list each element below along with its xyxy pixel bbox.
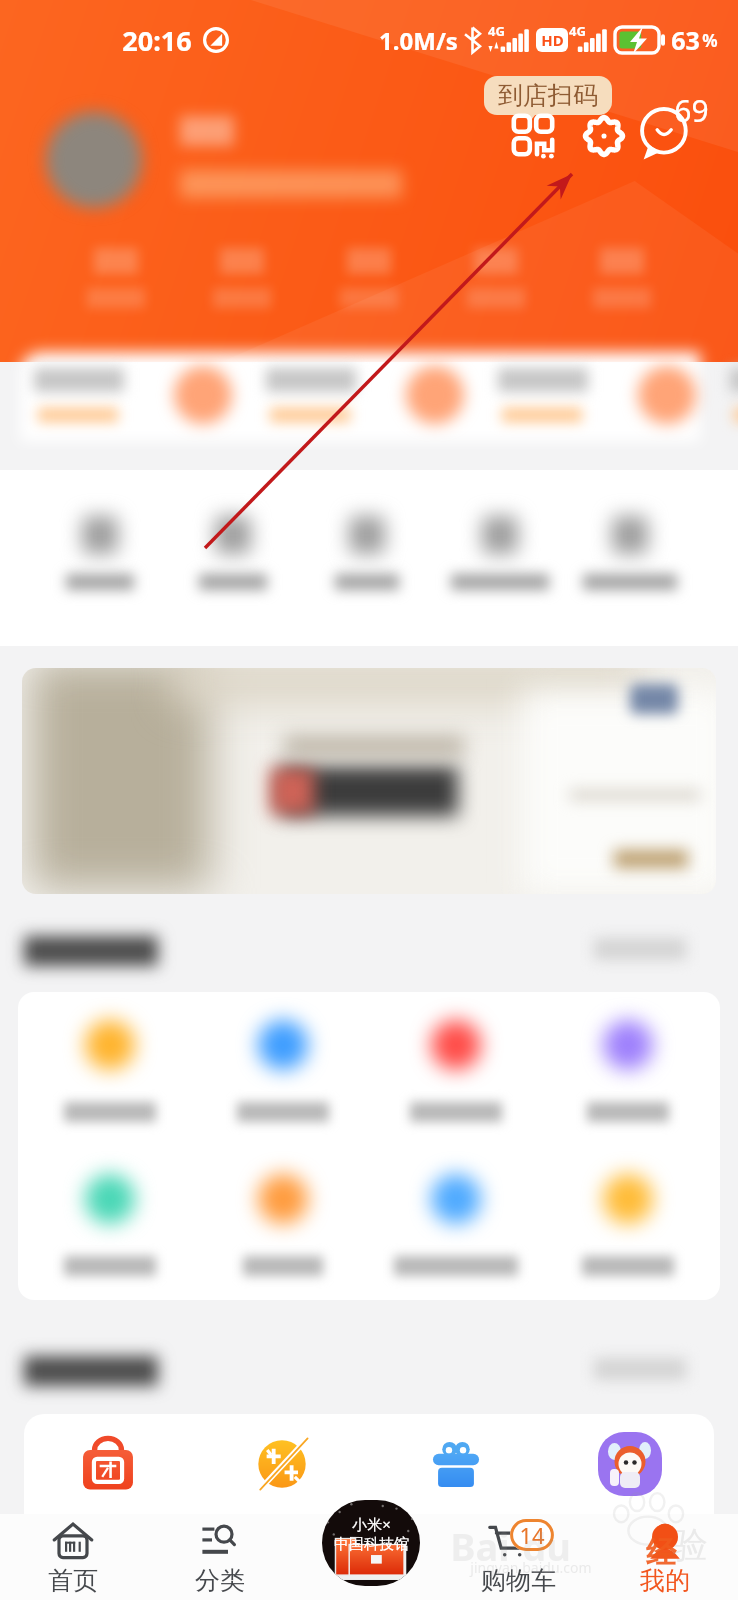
staticText: HD	[541, 30, 564, 50]
staticText: 到店扫码	[498, 80, 598, 111]
staticText: Bai	[450, 1520, 510, 1572]
staticText: 中国科技馆	[334, 1535, 409, 1554]
button[interactable]: Mi Shop	[68, 1424, 148, 1504]
staticText: 购物车	[481, 1565, 556, 1596]
button[interactable]	[171, 516, 295, 626]
button[interactable]: Discounts	[242, 1424, 322, 1504]
staticText: 4G	[569, 22, 586, 40]
button[interactable]	[498, 368, 588, 422]
staticText: 我的	[640, 1565, 690, 1596]
button[interactable]	[438, 516, 562, 626]
button[interactable]: Scan QR code	[508, 110, 558, 160]
button[interactable]	[266, 368, 356, 422]
button[interactable]: 首页	[13, 1518, 133, 1600]
staticText: 69	[674, 90, 709, 131]
button[interactable]: Mi Bunny	[590, 1424, 670, 1504]
staticText: 验	[672, 1522, 708, 1567]
button[interactable]	[568, 516, 692, 626]
staticText: 小米×	[352, 1514, 391, 1534]
staticText: 首页	[48, 1565, 98, 1596]
staticText: jingyan.baidu.com	[470, 1558, 592, 1577]
staticText: 14	[519, 1520, 545, 1550]
button[interactable]	[305, 516, 429, 626]
button[interactable]	[22, 668, 716, 894]
button[interactable]	[638, 366, 696, 424]
button[interactable]	[34, 368, 124, 422]
button[interactable]	[566, 1020, 690, 1150]
button[interactable]	[730, 368, 738, 422]
staticText: du	[522, 1520, 571, 1572]
staticText: %	[702, 29, 718, 52]
button[interactable]	[340, 248, 398, 308]
button[interactable]: Xiaomi x China Science Museum	[322, 1500, 420, 1586]
staticText: 20:16	[122, 22, 192, 59]
button[interactable]: 分类	[160, 1518, 280, 1600]
button[interactable]	[221, 1020, 345, 1150]
button[interactable]	[213, 248, 271, 308]
button[interactable]	[221, 1174, 345, 1300]
button[interactable]	[48, 1020, 172, 1150]
button[interactable]	[593, 248, 651, 308]
button[interactable]: Settings	[576, 108, 632, 164]
button[interactable]	[48, 1174, 172, 1300]
button[interactable]	[566, 1174, 690, 1300]
button[interactable]	[87, 248, 145, 308]
staticText: 63	[671, 23, 700, 57]
button[interactable]	[394, 1020, 518, 1150]
staticText: 4G	[488, 22, 505, 40]
staticText: 1.0M/s	[379, 24, 458, 57]
button[interactable]	[38, 516, 162, 626]
staticText: 分类	[195, 1565, 245, 1596]
button[interactable]: Gifts	[416, 1424, 496, 1504]
button[interactable]	[467, 248, 525, 308]
button[interactable]	[174, 366, 232, 424]
button[interactable]: 14	[458, 1518, 578, 1600]
button[interactable]: 我的	[605, 1518, 725, 1600]
button[interactable]	[394, 1174, 518, 1300]
button[interactable]: Messages	[640, 92, 714, 166]
button[interactable]	[406, 366, 464, 424]
staticText: 经	[646, 1534, 676, 1572]
